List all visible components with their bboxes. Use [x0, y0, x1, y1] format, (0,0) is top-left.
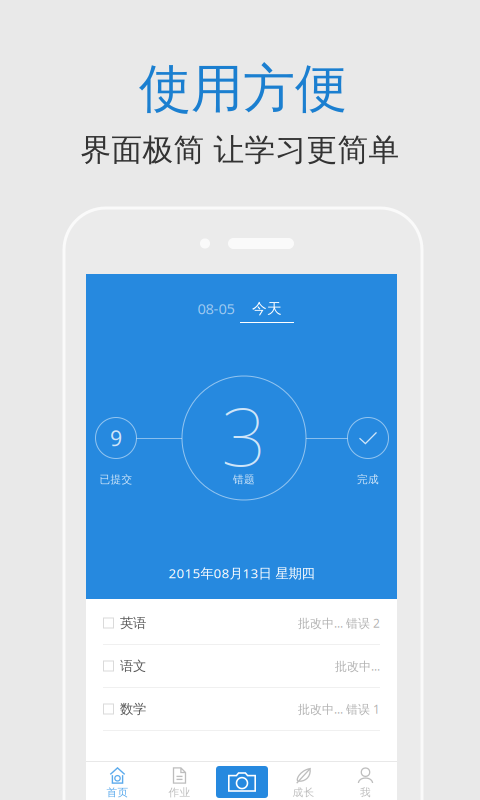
staticText: 批改中...	[335, 658, 380, 674]
staticText: 我	[360, 786, 371, 799]
button[interactable]: 语文	[86, 645, 397, 687]
staticText: 数学	[120, 701, 146, 717]
button[interactable]: 作业	[148, 767, 210, 800]
staticText: 界面极简 让学习更简单	[80, 131, 399, 169]
button[interactable]: 我	[334, 767, 396, 800]
staticText: 错题	[233, 473, 255, 486]
staticText: 使用方便	[139, 57, 347, 121]
staticText: 首页	[106, 786, 128, 799]
button[interactable]: 数学	[86, 688, 397, 730]
staticText: 9	[110, 424, 122, 452]
staticText: 已提交	[99, 473, 132, 486]
button[interactable]: 首页	[86, 767, 148, 800]
staticText: 08-05	[197, 299, 234, 318]
button[interactable]: 成长	[272, 767, 334, 800]
button[interactable]: Take photo	[216, 766, 268, 798]
staticText: 批改中... 错误 1	[298, 701, 380, 717]
staticText: 完成	[357, 473, 379, 486]
staticText: 今天	[252, 299, 282, 317]
button[interactable]: 英语	[86, 602, 397, 644]
staticText: 作业	[168, 786, 190, 799]
button[interactable]: 08-05	[194, 300, 238, 317]
staticText: 语文	[120, 658, 146, 674]
staticText: 英语	[120, 615, 146, 631]
staticText: 批改中... 错误 2	[298, 615, 380, 631]
staticText: 成长	[292, 786, 314, 799]
staticText: 3	[221, 382, 267, 488]
button[interactable]: 今天	[239, 300, 295, 323]
staticText: 2015年08月13日 星期四	[168, 564, 314, 582]
